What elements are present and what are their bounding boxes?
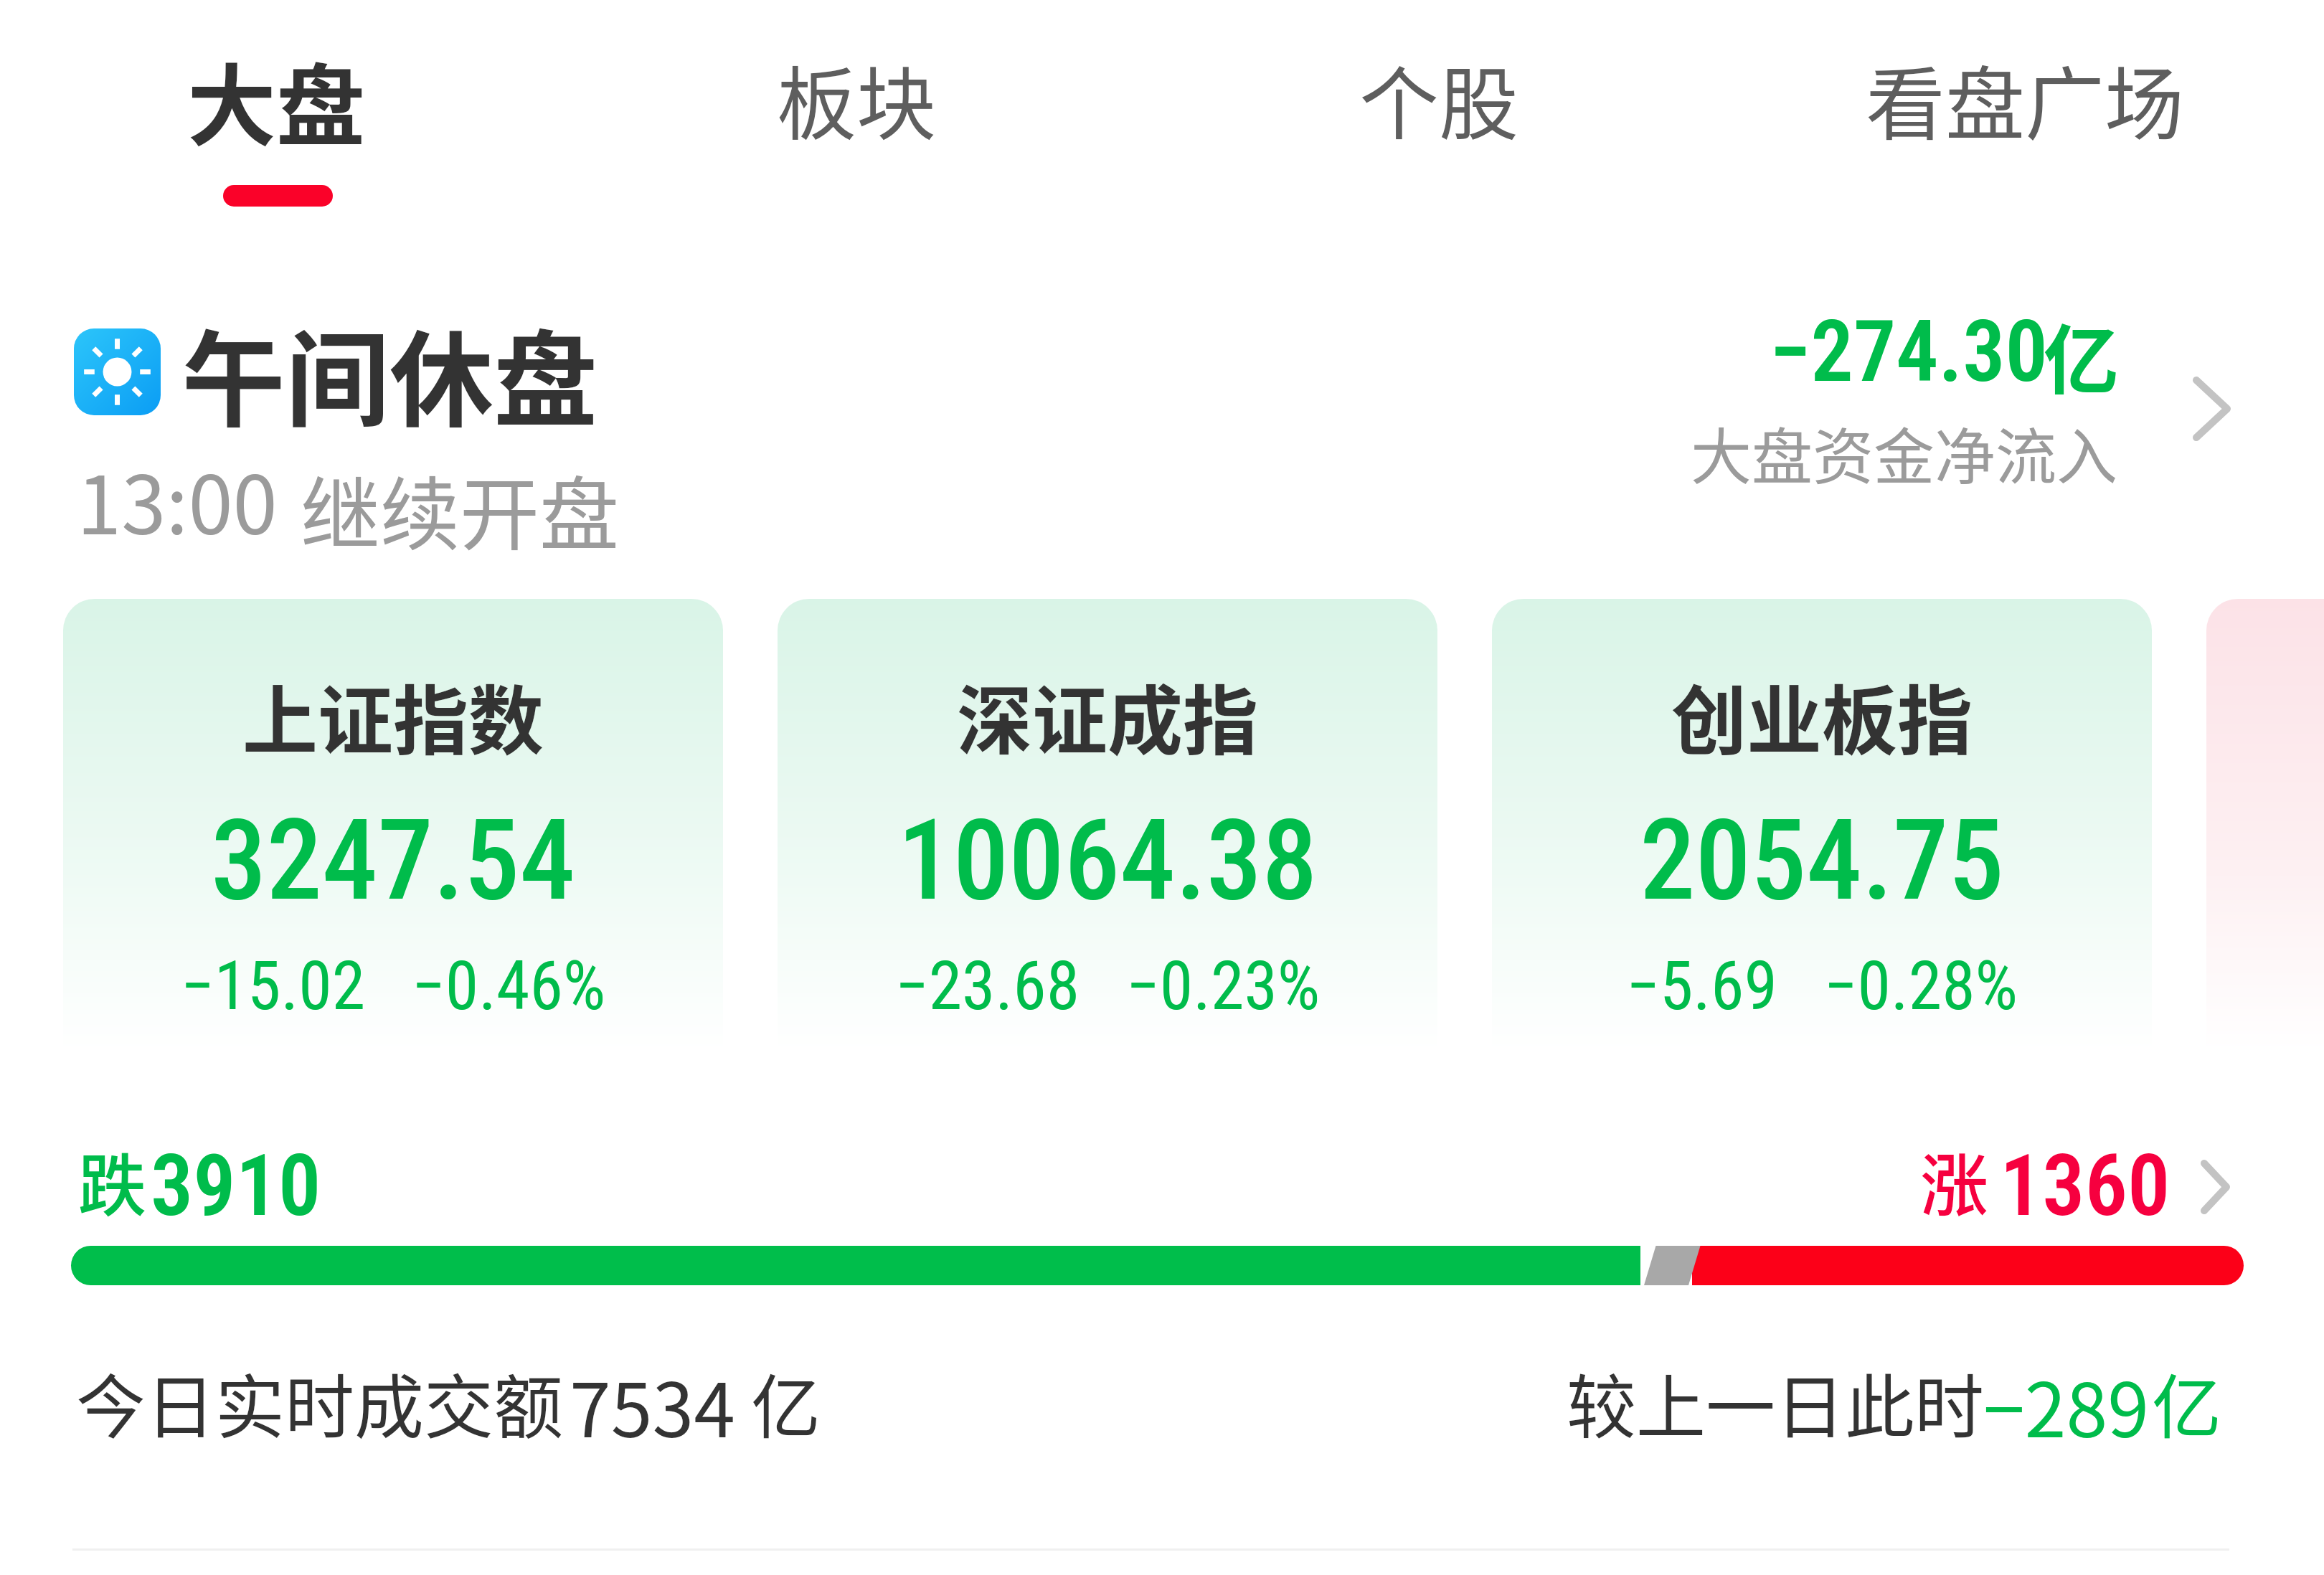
staticText: 午间休盘 [181,298,597,448]
staticText: 10064.38 [778,795,1437,973]
button[interactable]: 板块 [691,11,1021,191]
staticText: 7534 [570,1351,735,1459]
staticText: 2054.75 [1492,795,2152,973]
button[interactable]: 看盘广场 [1859,11,2189,191]
button[interactable]: 创业板指 [1492,599,2152,1091]
staticText: 亿 [2044,300,2120,409]
staticText: −15.02 −0.46% [63,947,723,1054]
staticText: −23.68 −0.23% [778,947,1437,1054]
staticText: 个股 [1359,41,1519,156]
staticText: 板块 [777,41,937,156]
button[interactable]: 个股 [1275,11,1605,191]
button[interactable]: 上证指数 [63,599,723,1091]
staticText: 创业板指 [1492,661,2152,781]
staticText: 上证指数 [63,661,723,781]
staticText: 3247.54 [63,795,723,973]
other: 查看涨跌分布 [2186,1148,2251,1226]
staticText: 涨 [1920,1132,1989,1231]
staticText: 继续开盘 [301,451,620,567]
staticText: 13:00 [77,441,278,557]
button[interactable]: 大盘 [108,11,445,227]
other: 查看大盘资金净流入 [2181,362,2245,448]
staticText: 亿 [2152,1351,2221,1452]
button[interactable]: 午间休盘 [0,287,2324,524]
staticText: 大盘资金净流入 [1691,408,2118,496]
staticText: −289 [1983,1351,2149,1459]
staticText: 大盘 [187,35,366,164]
button[interactable]: 深证成指 [778,599,1437,1091]
staticText: 看盘广场 [1866,41,2185,156]
staticText: −274.30 [1770,303,2048,402]
button[interactable] [2206,599,2324,1091]
button[interactable]: 跌 [0,1126,2324,1269]
staticText: −5.69 −0.28% [1492,947,2152,1054]
staticText: 较上一日此时 [1567,1351,1984,1452]
staticText: 亿 [751,1351,821,1452]
staticText: 今日实时成交额 [76,1351,563,1452]
staticText: 深证成指 [778,661,1437,781]
staticText: 跌 [78,1132,147,1231]
staticText: 3910 [151,1137,321,1236]
staticText: 1360 [2000,1137,2171,1236]
